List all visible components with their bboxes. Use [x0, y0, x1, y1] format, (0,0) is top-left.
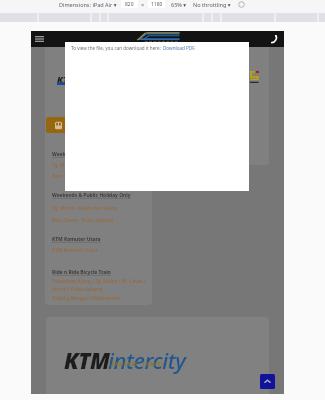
button[interactable]: Call: [270, 35, 278, 43]
staticText: 65% ▾: [171, 1, 187, 8]
staticText: To view the file, you can download it he…: [71, 45, 163, 51]
button[interactable]: Train schedule: [46, 117, 71, 133]
button[interactable]: KTM Komuter Utara: [52, 247, 98, 254]
button[interactable]: KTM Intercity: [64, 345, 188, 375]
staticText: 1180: [151, 1, 163, 8]
button[interactable]: KTM home: [57, 73, 77, 85]
button[interactable]: Padang Rengas / Butterworth: [52, 295, 121, 302]
button[interactable]: Sentul / Pulau Sebang: [52, 286, 103, 293]
button[interactable]: Batu Caves - Pulau Sebang: [52, 173, 114, 180]
button[interactable]: Pelabuhan Klang / Tg. Malim / Bt. Caves …: [52, 278, 146, 285]
staticText: SEAMLESS TRAVEL: [108, 361, 165, 368]
button[interactable]: Tg. Malim - Pelabuhan Klang: [52, 162, 118, 169]
button[interactable]: 820: [121, 0, 138, 8]
staticText: KTM: [57, 73, 77, 85]
button[interactable]: Scroll to top: [260, 374, 275, 389]
other: Rotate: [238, 1, 245, 8]
staticText: No throttling ▾: [193, 1, 231, 8]
staticText: ×: [141, 1, 145, 8]
button[interactable]: Weekdays Only: [52, 151, 90, 158]
button[interactable]: Batu Caves - Pulau Sebang: [52, 217, 114, 224]
staticText: 820: [125, 1, 134, 8]
button[interactable]: Menu: [35, 36, 44, 42]
button[interactable]: Ride n Ride Bicycle Train: [52, 269, 111, 276]
button[interactable]: Download PDF.: [163, 45, 196, 51]
button[interactable]: 1180: [148, 0, 165, 8]
staticText: KTM: [64, 345, 110, 375]
staticText: Dimensions: iPad Air ▾: [59, 1, 117, 8]
button[interactable]: Weekends & Public Holiday Only: [52, 192, 131, 199]
button[interactable]: Operator logo: [250, 71, 259, 84]
button[interactable]: KTM Komuter Utara: [52, 236, 101, 243]
staticText: intercity: [108, 345, 186, 375]
button[interactable]: Tg. Malim - Pelabuhan Klang: [52, 205, 118, 212]
